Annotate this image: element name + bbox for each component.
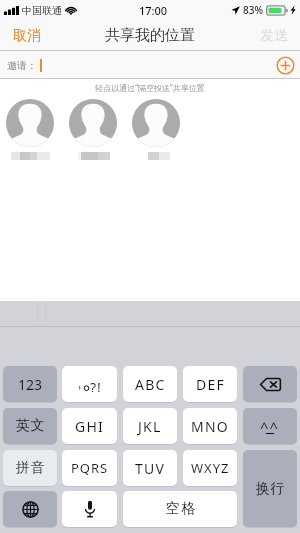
button[interactable]: 取消	[0, 20, 50, 51]
staticText: 轻点以通过“隔空投送”共享位置	[95, 82, 205, 93]
staticText: 共享我的位置	[105, 26, 195, 45]
staticText: JKL	[138, 417, 162, 436]
staticText: ^^	[260, 417, 280, 437]
staticText: 空格	[165, 500, 196, 518]
staticText: 发送	[260, 27, 288, 45]
button[interactable]: Switch keyboard	[3, 491, 57, 527]
button[interactable]: Emoji	[243, 408, 297, 444]
button[interactable]	[132, 99, 180, 160]
button[interactable]	[69, 99, 117, 160]
staticText: 中国联通	[22, 4, 62, 17]
staticText: 83%	[243, 3, 263, 17]
button[interactable]: 发送	[251, 20, 300, 51]
button[interactable]: Add contact	[276, 56, 295, 75]
button[interactable]: TUV	[123, 450, 177, 486]
staticText: PQRS	[71, 459, 109, 477]
staticText: 邀请：	[7, 59, 37, 72]
button[interactable]: 英文	[3, 408, 57, 444]
staticText: MNO	[191, 417, 229, 436]
button[interactable]: 123	[3, 366, 57, 402]
button[interactable]: GHI	[62, 408, 117, 444]
button[interactable]: Delete	[243, 366, 297, 402]
button[interactable]	[6, 99, 54, 160]
staticText: WXYZ	[191, 459, 230, 477]
staticText: 17:00	[139, 3, 168, 18]
button[interactable]: MNO	[183, 408, 237, 444]
staticText: TUV	[135, 459, 166, 478]
button[interactable]: ?!	[62, 366, 117, 402]
button[interactable]: JKL	[123, 408, 177, 444]
button[interactable]: 换行	[243, 450, 297, 527]
button[interactable]: 拼音	[3, 450, 57, 486]
staticText: 拼音	[15, 459, 45, 477]
staticText: DEF	[196, 375, 225, 394]
staticText: GHI	[75, 417, 104, 436]
staticText: 换行	[256, 480, 284, 498]
staticText: 取消	[13, 27, 41, 45]
button[interactable]: ABC	[123, 366, 177, 402]
staticText: 英文	[15, 417, 45, 435]
button[interactable]: DEF	[183, 366, 237, 402]
button[interactable]: 空格	[123, 491, 237, 527]
staticText: ABC	[135, 375, 166, 394]
button[interactable]: PQRS	[62, 450, 117, 486]
staticText: 123	[18, 375, 43, 394]
staticText: ?!	[90, 378, 102, 392]
button[interactable]: WXYZ	[183, 450, 237, 486]
button[interactable]: Dictation	[62, 491, 117, 527]
